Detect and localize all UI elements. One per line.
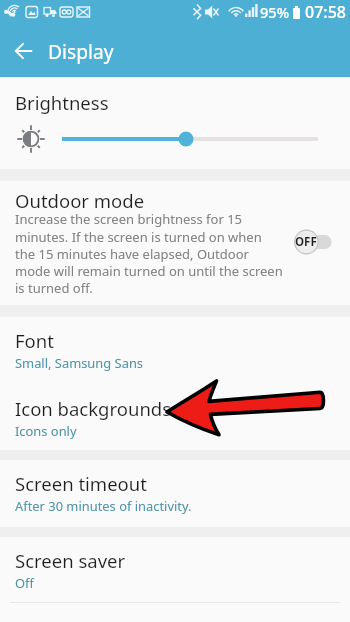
staticText: Icons only xyxy=(15,422,77,440)
button[interactable]: Screen saver xyxy=(0,537,350,622)
staticText: Display xyxy=(48,38,114,64)
staticText: 95% xyxy=(260,2,290,22)
button[interactable]: Back xyxy=(6,33,42,69)
staticText: Brightness xyxy=(15,90,109,115)
button[interactable]: Icon backgrounds xyxy=(0,383,350,449)
staticText: Small, Samsung Sans xyxy=(15,354,144,372)
button[interactable]: Outdoor mode switch, off xyxy=(291,225,337,257)
staticText: Screen saver xyxy=(15,548,126,573)
staticText: 07:58 xyxy=(305,1,346,23)
button[interactable]: Font xyxy=(0,317,350,383)
staticText: Increase the screen brightness for 15 mi… xyxy=(15,210,283,296)
staticText: Off xyxy=(15,574,34,592)
staticText: Font xyxy=(15,328,54,353)
staticText: After 30 minutes of inactivity. xyxy=(15,497,192,515)
staticText: Screen timeout xyxy=(15,471,147,496)
staticText: Outdoor mode xyxy=(15,188,145,213)
staticText: Icon backgrounds xyxy=(15,396,172,421)
button[interactable]: Screen timeout xyxy=(0,460,350,527)
button[interactable]: Outdoor mode xyxy=(0,181,350,305)
staticText: OFF xyxy=(295,234,317,250)
